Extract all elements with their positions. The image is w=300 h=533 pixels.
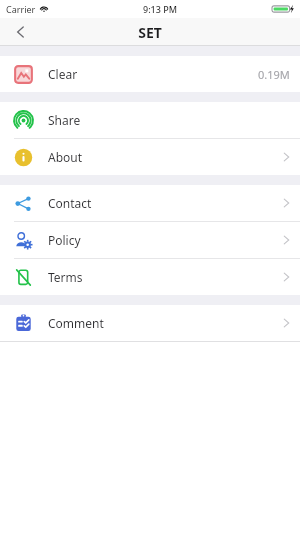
staticText: SET xyxy=(138,23,162,42)
button[interactable]: Terms xyxy=(0,259,300,295)
staticText: Contact xyxy=(48,195,92,211)
staticText: Terms xyxy=(48,269,83,285)
staticText: Share xyxy=(48,112,81,128)
button[interactable]: Contact xyxy=(0,185,300,221)
staticText: Clear xyxy=(48,66,78,82)
button[interactable]: Back xyxy=(4,18,38,46)
staticText: 9:13 PM xyxy=(143,3,177,15)
staticText: 0.19M xyxy=(258,67,290,82)
button[interactable]: Share xyxy=(0,102,300,138)
staticText: About xyxy=(48,149,83,165)
button[interactable]: Policy xyxy=(0,222,300,258)
button[interactable]: Comment xyxy=(0,305,300,341)
staticText: Comment xyxy=(48,315,104,331)
staticText: Carrier xyxy=(6,3,36,15)
button[interactable]: Clear xyxy=(0,56,300,92)
staticText: Policy xyxy=(48,232,81,248)
button[interactable]: About xyxy=(0,139,300,175)
